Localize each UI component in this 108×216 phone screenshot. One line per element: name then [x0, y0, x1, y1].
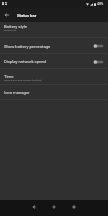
button[interactable]: Show battery percentage — [0, 38, 108, 54]
staticText: Display network speed — [4, 59, 93, 64]
button[interactable]: Home — [47, 200, 61, 214]
button[interactable]: Navigate up — [0, 8, 14, 22]
staticText: Status bar — [17, 13, 37, 18]
button[interactable]: Recent apps — [67, 200, 81, 214]
button[interactable]: Battery style — [0, 22, 108, 38]
staticText: Battery bar — [4, 29, 17, 32]
staticText: Show hours and minutes (default) — [4, 79, 42, 82]
button[interactable]: Icon manager — [0, 85, 108, 100]
staticText: 48% — [97, 2, 104, 6]
button[interactable]: Back — [27, 200, 41, 214]
staticText: Time — [4, 74, 14, 79]
button[interactable]: Display network speed — [0, 54, 108, 69]
staticText: Icon manager — [4, 90, 30, 95]
staticText: Battery style — [4, 24, 28, 29]
button[interactable]: Time — [0, 69, 108, 85]
staticText: Show battery percentage — [4, 44, 93, 49]
